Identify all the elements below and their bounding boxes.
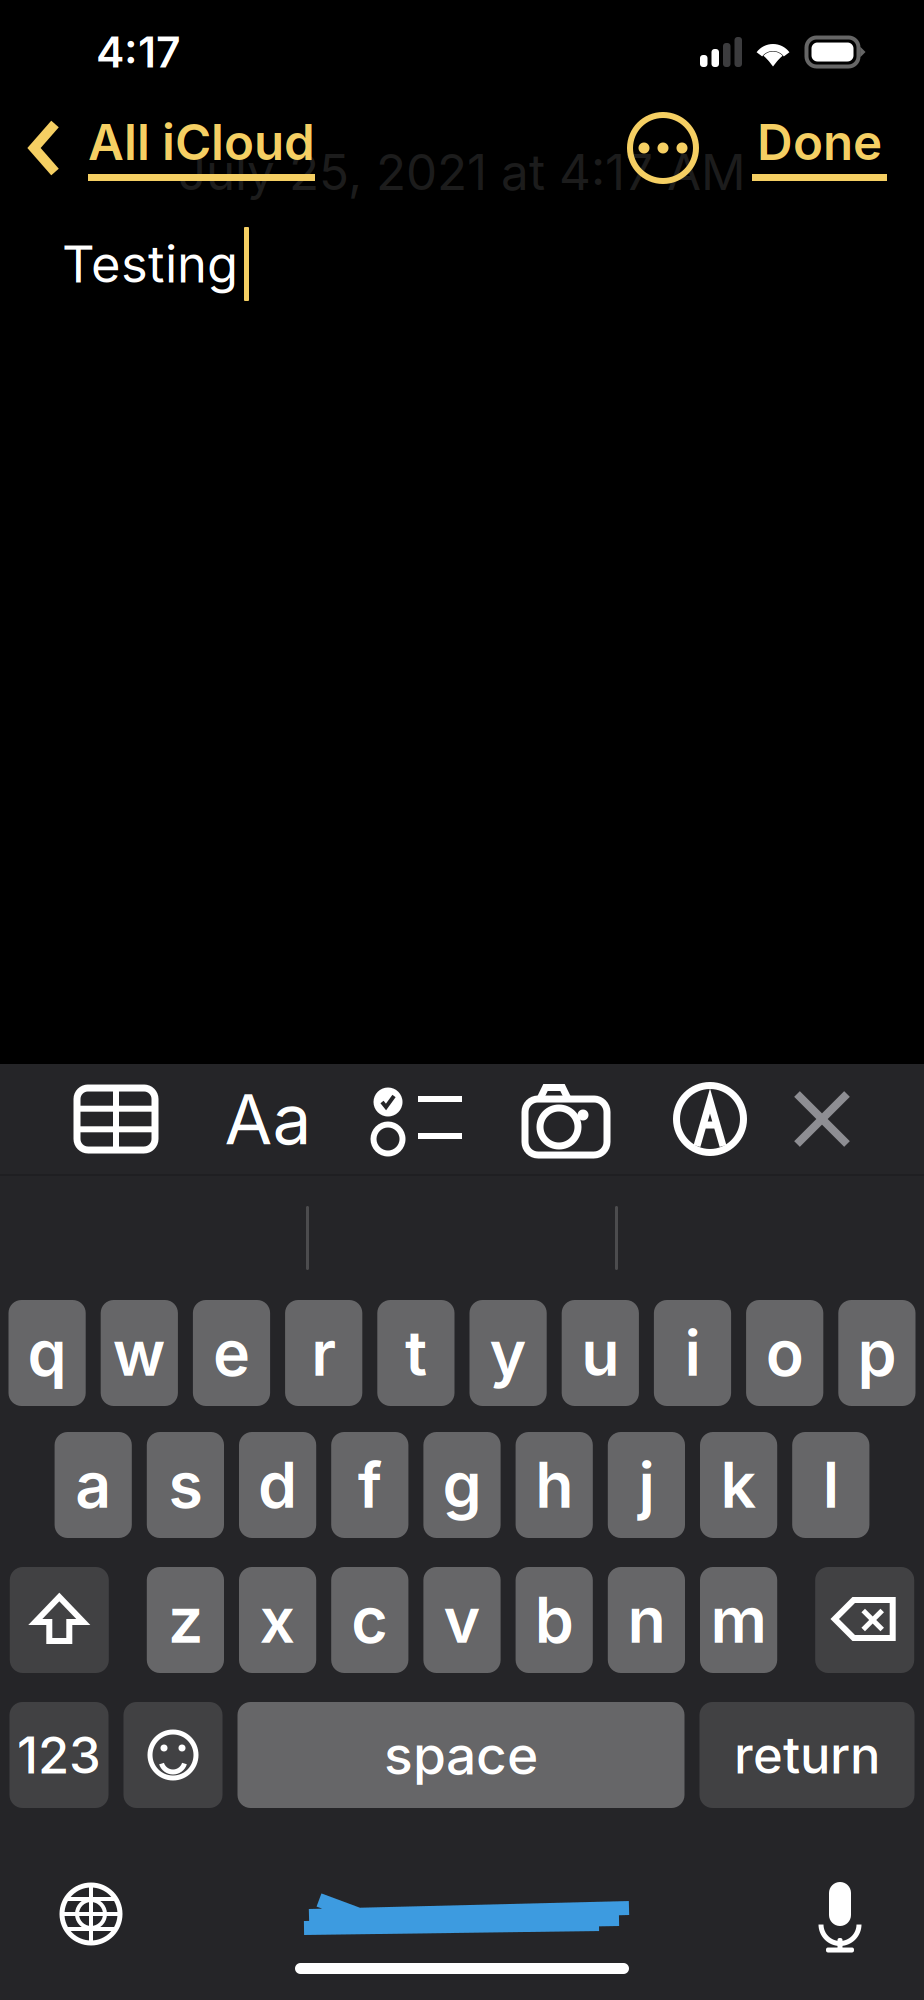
- staticText: f: [358, 1447, 382, 1523]
- button[interactable]: u: [562, 1300, 639, 1406]
- staticText: All iCloud: [88, 112, 315, 172]
- staticText: k: [721, 1447, 757, 1523]
- button[interactable]: c: [331, 1567, 408, 1673]
- button[interactable]: q: [8, 1300, 86, 1406]
- button[interactable]: m: [700, 1567, 777, 1673]
- button[interactable]: Checklist: [350, 1069, 486, 1169]
- button[interactable]: All iCloud: [28, 112, 315, 184]
- staticText: m: [711, 1582, 767, 1658]
- button[interactable]: h: [516, 1432, 593, 1538]
- staticText: Aa: [224, 1077, 311, 1161]
- staticText: return: [734, 1724, 880, 1786]
- staticText: h: [535, 1447, 573, 1523]
- staticText: e: [213, 1315, 250, 1391]
- button[interactable]: Markup: [642, 1069, 778, 1169]
- button[interactable]: Format: [200, 1069, 336, 1169]
- button[interactable]: x: [239, 1567, 316, 1673]
- button[interactable]: y: [469, 1300, 547, 1406]
- staticText: s: [168, 1447, 202, 1523]
- staticText: 123: [17, 1724, 101, 1786]
- button[interactable]: t: [377, 1300, 454, 1406]
- staticText: w: [113, 1315, 166, 1391]
- button[interactable]: o: [746, 1300, 823, 1406]
- button[interactable]: return: [699, 1702, 914, 1808]
- button[interactable]: d: [239, 1432, 316, 1538]
- staticText: c: [351, 1582, 388, 1658]
- button[interactable]: 123: [9, 1702, 108, 1808]
- staticText: a: [75, 1447, 111, 1523]
- button[interactable]: More: [628, 113, 698, 183]
- staticText: o: [766, 1315, 804, 1391]
- button[interactable]: space: [237, 1702, 684, 1808]
- button[interactable]: i: [654, 1300, 731, 1406]
- staticText: v: [443, 1582, 480, 1658]
- button[interactable]: g: [423, 1432, 501, 1538]
- staticText: d: [258, 1447, 297, 1523]
- staticText: 4:17: [96, 26, 181, 78]
- button[interactable]: j: [608, 1432, 685, 1538]
- button[interactable]: w: [101, 1300, 178, 1406]
- button[interactable]: Next keyboard: [60, 1883, 122, 1945]
- button[interactable]: Camera: [498, 1069, 634, 1169]
- button[interactable]: l: [792, 1432, 869, 1538]
- staticText: p: [857, 1315, 896, 1391]
- staticText: i: [684, 1315, 700, 1391]
- button[interactable]: b: [516, 1567, 593, 1673]
- staticText: Testing: [62, 233, 238, 295]
- staticText: z: [168, 1582, 203, 1658]
- button[interactable]: s: [147, 1432, 224, 1538]
- button[interactable]: f: [331, 1432, 408, 1538]
- button[interactable]: k: [700, 1432, 777, 1538]
- button[interactable]: Table: [48, 1069, 184, 1169]
- staticText: n: [627, 1582, 665, 1658]
- staticText: t: [405, 1315, 427, 1391]
- button[interactable]: Dictate: [816, 1874, 864, 1954]
- button[interactable]: v: [423, 1567, 501, 1673]
- staticText: x: [260, 1582, 296, 1658]
- button[interactable]: Delete: [815, 1567, 914, 1673]
- button[interactable]: r: [285, 1300, 362, 1406]
- button[interactable]: Close: [754, 1069, 890, 1169]
- staticText: u: [581, 1315, 619, 1391]
- button[interactable]: Emoji: [123, 1702, 222, 1808]
- staticText: July 25, 2021 at 4:17 AM: [178, 142, 746, 202]
- button[interactable]: a: [55, 1432, 132, 1538]
- staticText: j: [638, 1447, 654, 1523]
- button[interactable]: e: [193, 1300, 270, 1406]
- button[interactable]: z: [147, 1567, 224, 1673]
- staticText: l: [823, 1447, 839, 1523]
- button[interactable]: n: [608, 1567, 685, 1673]
- button[interactable]: p: [838, 1300, 915, 1406]
- staticText: q: [28, 1315, 67, 1391]
- staticText: r: [311, 1315, 336, 1391]
- staticText: b: [535, 1582, 574, 1658]
- staticText: g: [442, 1447, 481, 1523]
- staticText: y: [490, 1315, 527, 1391]
- staticText: space: [384, 1723, 538, 1787]
- button[interactable]: Shift: [10, 1567, 109, 1673]
- button[interactable]: Done: [752, 115, 887, 181]
- staticText: Done: [757, 112, 882, 172]
